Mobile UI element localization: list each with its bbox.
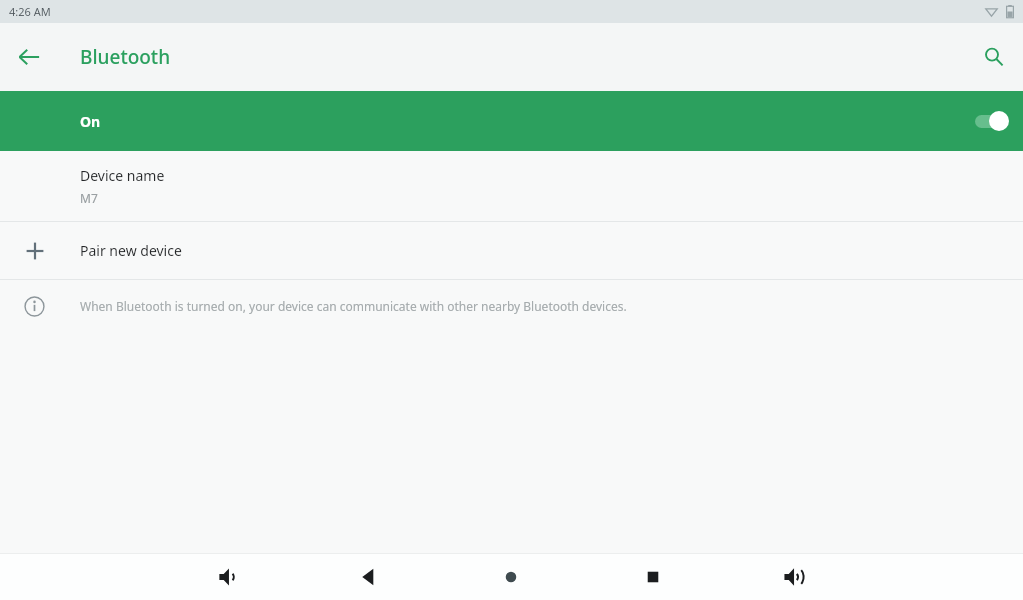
- staticText: Bluetooth: [80, 44, 171, 70]
- button[interactable]: On: [0, 91, 1023, 151]
- button[interactable]: Volume up: [773, 555, 817, 599]
- button[interactable]: Home: [489, 555, 533, 599]
- button[interactable]: Recent apps: [631, 555, 675, 599]
- staticText: On: [80, 112, 101, 131]
- button[interactable]: Device name: [0, 151, 1023, 221]
- button[interactable]: Back: [347, 555, 391, 599]
- staticText: 4:26 AM: [9, 4, 51, 19]
- button[interactable]: Search: [973, 36, 1015, 78]
- staticText: Pair new device: [80, 241, 182, 260]
- button[interactable]: Volume down: [206, 555, 250, 599]
- staticText: When Bluetooth is turned on, your device…: [80, 298, 627, 314]
- button[interactable]: Back: [9, 37, 49, 77]
- button[interactable]: Pair new device: [0, 222, 1023, 279]
- staticText: Device name: [80, 166, 165, 185]
- staticText: M7: [80, 190, 98, 206]
